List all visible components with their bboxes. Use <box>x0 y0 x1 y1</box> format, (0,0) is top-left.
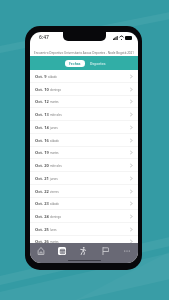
staticText: jueves <box>50 126 58 130</box>
staticText: sábado <box>50 139 59 143</box>
staticText: Oct. 21 <box>35 176 49 181</box>
staticText: Oct. 26 <box>35 239 49 244</box>
staticText: Deportes <box>90 61 106 66</box>
staticText: Oct. 24 <box>35 214 49 219</box>
button[interactable]: Fechas <box>65 60 85 67</box>
staticText: miércoles <box>50 164 62 168</box>
button[interactable]: Oct. 13 <box>30 108 138 121</box>
button[interactable]: Oct. 24 <box>30 210 138 223</box>
button[interactable]: Oct. 16 <box>30 134 138 147</box>
button[interactable]: Oct. 25 <box>30 223 138 236</box>
staticText: Oct. 10 <box>35 87 49 92</box>
button[interactable]: Oct. 20 <box>30 159 138 172</box>
button[interactable]: Oct. 19 <box>30 146 138 159</box>
button[interactable]: Schedule <box>51 243 72 258</box>
staticText: Oct. 22 <box>35 189 49 194</box>
staticText: Oct. 12 <box>35 99 49 104</box>
button[interactable]: Deportes <box>86 60 110 67</box>
staticText: Oct. 9 <box>35 74 47 79</box>
staticText: viernes <box>50 190 59 194</box>
staticText: Oct. 25 <box>35 227 49 232</box>
button[interactable]: Oct. 12 <box>30 95 138 108</box>
staticText: Oct. 20 <box>35 163 49 168</box>
staticText: martes <box>50 151 59 155</box>
staticText: miércoles <box>50 113 62 117</box>
staticText: Oct. 13 <box>35 112 49 117</box>
staticText: domingo <box>50 88 62 92</box>
staticText: Oct. 16 <box>35 138 49 143</box>
button[interactable]: Home <box>30 243 51 258</box>
staticText: Encuentro Deportivo Universitario Asoux … <box>34 51 134 55</box>
button[interactable]: Results <box>94 243 116 258</box>
staticText: martes <box>50 100 59 104</box>
staticText: 6:47 <box>39 34 49 41</box>
button[interactable]: Oct. 23 <box>30 197 138 210</box>
staticText: jueves <box>50 177 58 181</box>
button[interactable]: Oct. 9 <box>30 70 138 83</box>
staticText: Fechas <box>69 61 81 66</box>
button[interactable]: Activities <box>72 243 94 258</box>
button[interactable]: Oct. 22 <box>30 185 138 198</box>
staticText: domingo <box>50 215 62 219</box>
button[interactable]: Oct. 26 <box>30 235 138 248</box>
button[interactable]: More <box>116 243 138 258</box>
staticText: Oct. 14 <box>35 125 49 130</box>
button[interactable]: Oct. 21 <box>30 172 138 185</box>
staticText: Oct. 19 <box>35 150 49 155</box>
staticText: martes <box>50 240 59 244</box>
staticText: sábado <box>50 202 59 206</box>
staticText: sábado <box>48 75 57 79</box>
button[interactable]: Oct. 10 <box>30 83 138 96</box>
staticText: lunes <box>50 228 57 232</box>
button[interactable]: Oct. 14 <box>30 121 138 134</box>
staticText: Oct. 23 <box>35 201 49 206</box>
